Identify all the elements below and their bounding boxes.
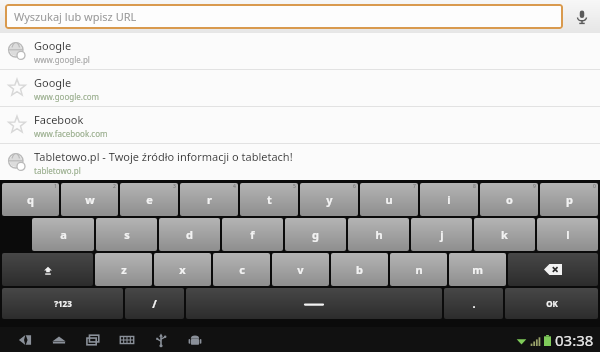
button[interactable]: b [331,253,388,286]
button[interactable]: Space [186,288,442,319]
staticText: c [239,262,245,277]
staticText: Tabletowo.pl - Twoje źródło informacji o… [34,149,293,164]
button[interactable]: y [300,183,358,216]
button[interactable]: Recent apps [76,327,110,352]
staticText: p [566,192,573,207]
button[interactable]: e [120,183,178,216]
button[interactable]: . [444,288,503,319]
staticText: 03:38 [555,330,594,350]
staticText: z [121,262,127,277]
button[interactable]: o [480,183,538,216]
staticText: t [267,192,272,207]
staticText: i [447,192,451,207]
staticText: g [312,227,319,242]
staticText: . [472,296,476,311]
button[interactable]: l [537,218,598,251]
staticText: ?123 [54,298,72,309]
staticText: 7 [413,183,416,190]
staticText: v [297,262,304,277]
staticText: Wyszukaj lub wpisz URL [14,9,137,24]
staticText: m [472,262,483,277]
staticText: 9 [533,183,536,190]
staticText: q [27,192,34,207]
button[interactable]: / [125,288,184,319]
staticText: w [85,192,95,207]
staticText: o [506,192,513,207]
button[interactable]: v [272,253,329,286]
button[interactable]: USB [144,327,178,352]
staticText: Google [34,75,72,90]
button[interactable]: x [154,253,211,286]
staticText: d [186,227,193,242]
staticText: www.google.pl [34,54,90,65]
button[interactable]: p [540,183,598,216]
button[interactable]: Wyszukaj lub wpisz URL [5,4,563,29]
button[interactable]: i [420,183,478,216]
staticText: y [326,192,333,207]
button[interactable]: n [390,253,447,286]
button[interactable]: q [2,183,59,216]
button[interactable]: s [96,218,157,251]
staticText: j [440,227,444,242]
button[interactable]: m [449,253,506,286]
staticText: www.facebook.com [34,128,108,139]
staticText: k [501,227,508,242]
staticText: 6 [353,183,356,190]
staticText: e [146,192,153,207]
button[interactable]: Tabletowo.pl - Twoje źródło informacji o… [0,144,600,180]
button[interactable]: OK [505,288,598,319]
button[interactable]: Home [42,327,76,352]
staticText: r [207,192,212,207]
staticText: / [152,296,157,311]
staticText: Google [34,38,72,53]
staticText: a [60,227,67,242]
button[interactable]: Keyboard [110,327,144,352]
staticText: l [566,227,570,242]
button[interactable]: c [213,253,270,286]
staticText: h [375,227,383,242]
staticText: 8 [473,183,476,190]
button[interactable]: Google [0,70,600,106]
staticText: 2 [113,183,116,190]
button[interactable]: Google [0,33,600,69]
staticText: f [250,227,255,242]
staticText: 5 [293,183,296,190]
button[interactable]: k [474,218,535,251]
staticText: www.google.com [34,91,100,102]
staticText: Facebook [34,112,84,127]
staticText: s [124,227,130,242]
button[interactable]: a [32,218,94,251]
staticText: n [415,262,423,277]
button[interactable]: ?123 [2,288,123,319]
button[interactable]: u [360,183,418,216]
staticText: u [385,192,393,207]
button[interactable]: h [348,218,409,251]
button[interactable]: Facebook [0,107,600,143]
staticText: 4 [233,183,236,190]
button[interactable]: f [222,218,283,251]
button[interactable]: Backspace [508,253,598,286]
button[interactable]: r [180,183,238,216]
staticText: 0 [593,183,596,190]
button[interactable]: d [159,218,220,251]
button[interactable]: Android [178,327,212,352]
button[interactable]: t [240,183,298,216]
button[interactable]: Voice search [569,4,595,29]
button[interactable]: w [61,183,118,216]
button[interactable]: Shift [2,253,93,286]
button[interactable]: g [285,218,346,251]
button[interactable]: j [411,218,472,251]
button[interactable]: Back [8,327,42,352]
staticText: 1 [54,183,57,190]
staticText: 3 [173,183,176,190]
staticText: tabletowo.pl [34,165,81,176]
button[interactable]: z [95,253,152,286]
staticText: b [356,262,363,277]
staticText: OK [546,298,558,309]
staticText: x [179,262,186,277]
